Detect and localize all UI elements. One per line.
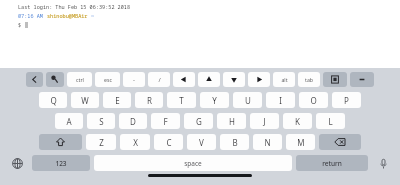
button[interactable]: M — [286, 134, 315, 150]
button[interactable]: ctrl — [67, 72, 92, 87]
button[interactable]: A — [55, 113, 83, 129]
staticText: O — [310, 95, 317, 106]
button[interactable]: Down arrow — [223, 72, 245, 87]
staticText: ~ — [91, 12, 95, 19]
staticText: G — [196, 116, 202, 127]
button[interactable]: Delete — [319, 134, 361, 150]
button[interactable]: - — [123, 72, 145, 87]
staticText: A — [66, 116, 72, 127]
button[interactable]: Dictation — [372, 155, 394, 171]
button[interactable]: 123 — [32, 155, 90, 171]
button[interactable]: N — [253, 134, 282, 150]
staticText: 07:16 AM — [18, 12, 47, 19]
button[interactable]: Back — [26, 72, 43, 87]
staticText: shinobu@MBAir — [47, 12, 91, 19]
staticText: return — [322, 159, 342, 168]
button[interactable]: Right arrow — [248, 72, 270, 87]
staticText: V — [199, 137, 204, 148]
button[interactable]: Z — [86, 134, 116, 150]
button[interactable]: esc — [95, 72, 120, 87]
staticText: 123 — [55, 159, 67, 168]
button[interactable]: Up arrow — [198, 72, 220, 87]
staticText: / — [158, 76, 161, 84]
button[interactable]: X — [120, 134, 150, 150]
staticText: ctrl — [76, 76, 84, 83]
button[interactable]: V — [187, 134, 216, 150]
button[interactable]: return — [296, 155, 368, 171]
button[interactable]: I — [266, 92, 295, 108]
button[interactable]: Q — [39, 92, 67, 108]
button[interactable]: C — [154, 134, 183, 150]
staticText: P — [344, 95, 349, 106]
staticText: $ — [18, 21, 25, 28]
staticText: I — [279, 95, 282, 106]
button[interactable]: G — [184, 113, 213, 129]
staticText: Q — [50, 95, 57, 106]
staticText: H — [229, 116, 235, 127]
button[interactable]: Left arrow — [173, 72, 195, 87]
staticText: M — [297, 137, 305, 148]
button[interactable]: Y — [200, 92, 229, 108]
button[interactable]: tab — [298, 72, 320, 87]
staticText: - — [133, 76, 135, 84]
staticText: Last login: Thu Feb 15 06:39:52 2018 — [18, 3, 131, 10]
button[interactable]: L — [316, 113, 345, 129]
button[interactable]: P — [332, 92, 361, 108]
staticText: J — [263, 116, 266, 127]
button[interactable]: / — [148, 72, 170, 87]
staticText: T — [179, 95, 184, 106]
staticText: W — [81, 95, 89, 106]
staticText: alt — [281, 76, 288, 83]
staticText: C — [166, 137, 172, 148]
button[interactable]: R — [135, 92, 163, 108]
staticText: esc — [104, 76, 112, 83]
button[interactable]: Change keyboard — [6, 155, 28, 171]
staticText: S — [99, 116, 104, 127]
button[interactable]: Keyboard shortcut — [46, 72, 64, 87]
staticText: F — [163, 116, 168, 127]
staticText: N — [264, 137, 271, 148]
button[interactable]: O — [299, 92, 328, 108]
button[interactable]: alt — [273, 72, 295, 87]
button[interactable]: More — [350, 72, 374, 87]
button[interactable]: K — [283, 113, 312, 129]
staticText: B — [232, 137, 238, 148]
button[interactable]: space — [94, 155, 292, 171]
button[interactable]: E — [103, 92, 131, 108]
button[interactable]: S — [87, 113, 115, 129]
button[interactable]: J — [250, 113, 279, 129]
button[interactable]: B — [220, 134, 249, 150]
button[interactable]: F — [151, 113, 180, 129]
button[interactable]: H — [217, 113, 246, 129]
button[interactable]: U — [233, 92, 262, 108]
staticText: tab — [305, 76, 313, 83]
button[interactable]: Shift — [39, 134, 82, 150]
staticText: X — [133, 137, 138, 148]
staticText: U — [245, 95, 251, 106]
staticText: space — [184, 159, 202, 168]
button[interactable]: T — [167, 92, 196, 108]
staticText: K — [295, 116, 300, 127]
staticText: D — [130, 116, 136, 127]
button[interactable]: D — [119, 113, 147, 129]
staticText: L — [328, 116, 333, 127]
staticText: E — [115, 95, 120, 106]
staticText: R — [147, 95, 152, 106]
staticText: Y — [212, 95, 217, 106]
button[interactable]: W — [71, 92, 99, 108]
staticText: Z — [99, 137, 104, 148]
button[interactable]: Paste — [323, 72, 347, 87]
